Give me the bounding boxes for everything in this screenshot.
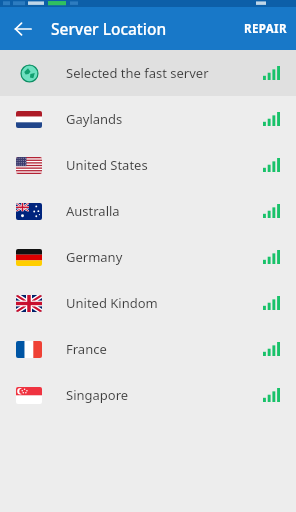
button[interactable]: United States <box>0 142 296 188</box>
button[interactable]: France <box>0 326 296 372</box>
staticText: Selected the fast server <box>66 64 209 82</box>
button[interactable]: Germany <box>0 234 296 280</box>
button[interactable]: United Kindom <box>0 280 296 326</box>
staticText: Australla <box>66 202 120 220</box>
button[interactable]: Singapore <box>0 372 296 418</box>
button[interactable]: Gaylands <box>0 96 296 142</box>
button[interactable]: Selected the fast server <box>0 50 296 96</box>
staticText: United States <box>66 156 148 174</box>
button[interactable]: Australla <box>0 188 296 234</box>
staticText: Gaylands <box>66 110 123 128</box>
button[interactable]: Back <box>8 14 38 44</box>
staticText: France <box>66 340 107 358</box>
staticText: Germany <box>66 248 123 266</box>
button[interactable]: REPAIR <box>235 13 296 45</box>
staticText: Server Location <box>51 18 167 39</box>
staticText: Singapore <box>66 386 129 404</box>
staticText: REPAIR <box>244 21 287 37</box>
staticText: United Kindom <box>66 294 158 312</box>
